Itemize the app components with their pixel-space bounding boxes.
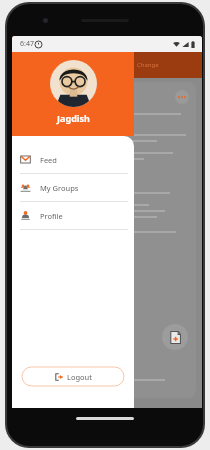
staticText: Jagdish [57,112,90,124]
staticText: 6:47 [20,39,34,49]
button[interactable]: Feed [12,146,134,173]
staticText: Profile [40,211,63,221]
staticText: Feed [40,155,57,165]
button[interactable]: Logout [22,367,124,386]
staticText: Logout [67,372,92,382]
staticText: My Groups [40,183,79,193]
button[interactable]: Add note [162,324,188,350]
button[interactable]: My Groups [12,174,134,201]
button[interactable]: More options [175,90,189,104]
staticText: Change [137,61,159,69]
button[interactable]: Profile [12,202,134,229]
